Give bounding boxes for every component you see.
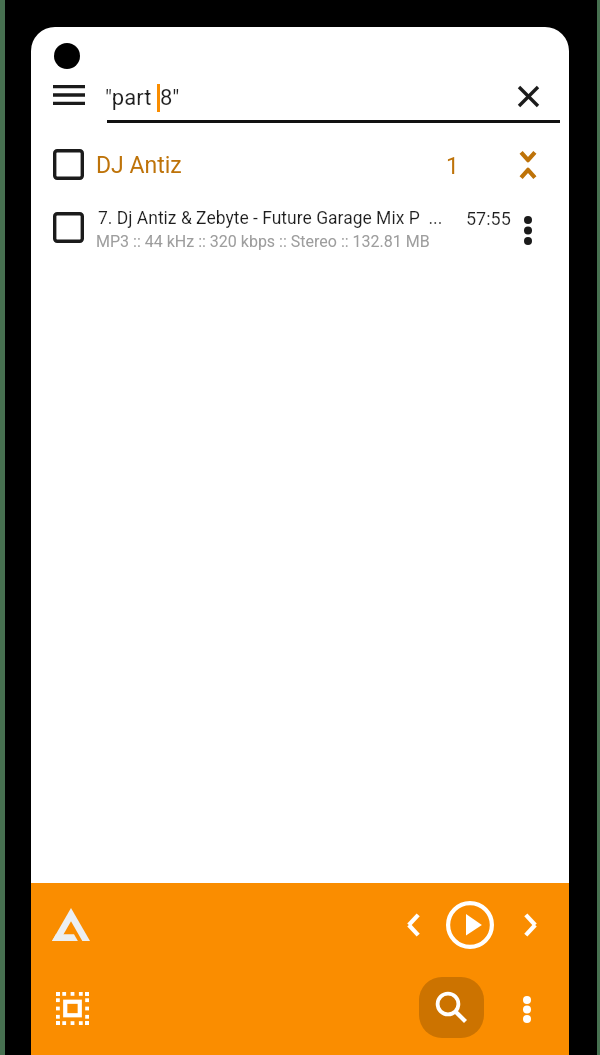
staticText: "part <box>105 85 157 111</box>
button[interactable]: AIMP player <box>46 902 95 947</box>
staticText: MP3 :: 44 kHz :: 320 kbps :: Stereo :: 1… <box>96 232 446 251</box>
button[interactable]: Select all <box>45 981 100 1036</box>
staticText: 8" <box>160 85 180 111</box>
button[interactable]: Play <box>442 897 498 953</box>
button[interactable]: Clear search <box>501 72 556 120</box>
button[interactable]: Next track <box>505 900 555 950</box>
button[interactable] <box>31 198 569 258</box>
button[interactable] <box>31 136 569 194</box>
staticText: 7. Dj Antiz & Zebyte - Future Garage Mix… <box>98 208 448 229</box>
button[interactable]: Collapse group <box>506 139 550 191</box>
button[interactable]: Track options <box>508 206 548 255</box>
staticText: 57:55 <box>466 208 511 229</box>
staticText: DJ Antiz <box>96 152 182 179</box>
staticText: 1 <box>446 153 459 180</box>
button[interactable]: Navigation menu <box>41 73 97 117</box>
button[interactable]: Previous track <box>388 900 438 950</box>
button[interactable]: Search <box>419 977 484 1038</box>
button[interactable]: More options <box>505 983 549 1035</box>
